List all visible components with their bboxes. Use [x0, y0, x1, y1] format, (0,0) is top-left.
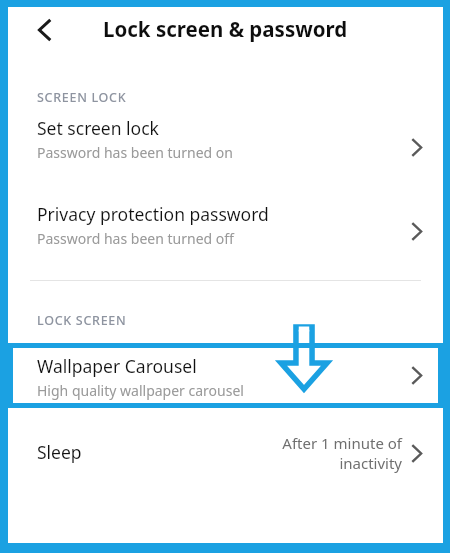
button[interactable]: Wallpaper Carousel	[13, 348, 438, 403]
button[interactable]: Set screen lock	[8, 106, 443, 188]
button[interactable]: Back	[22, 7, 68, 53]
staticText: SCREEN LOCK	[37, 89, 127, 106]
staticText: High quality wallpaper carousel	[37, 381, 244, 400]
staticText: Set screen lock	[37, 116, 159, 140]
staticText: Password has been turned on	[37, 143, 233, 162]
staticText: Lock screen & password	[103, 15, 348, 43]
staticText: After 1 minute of inactivity	[262, 433, 402, 473]
button[interactable]: Privacy protection password	[8, 188, 443, 274]
button[interactable]: Sleep	[8, 422, 443, 484]
staticText: Wallpaper Carousel	[37, 354, 197, 378]
staticText: Privacy protection password	[37, 202, 269, 226]
staticText: LOCK SCREEN	[37, 312, 127, 329]
staticText: Sleep	[37, 440, 82, 464]
staticText: Password has been turned off	[37, 229, 234, 248]
